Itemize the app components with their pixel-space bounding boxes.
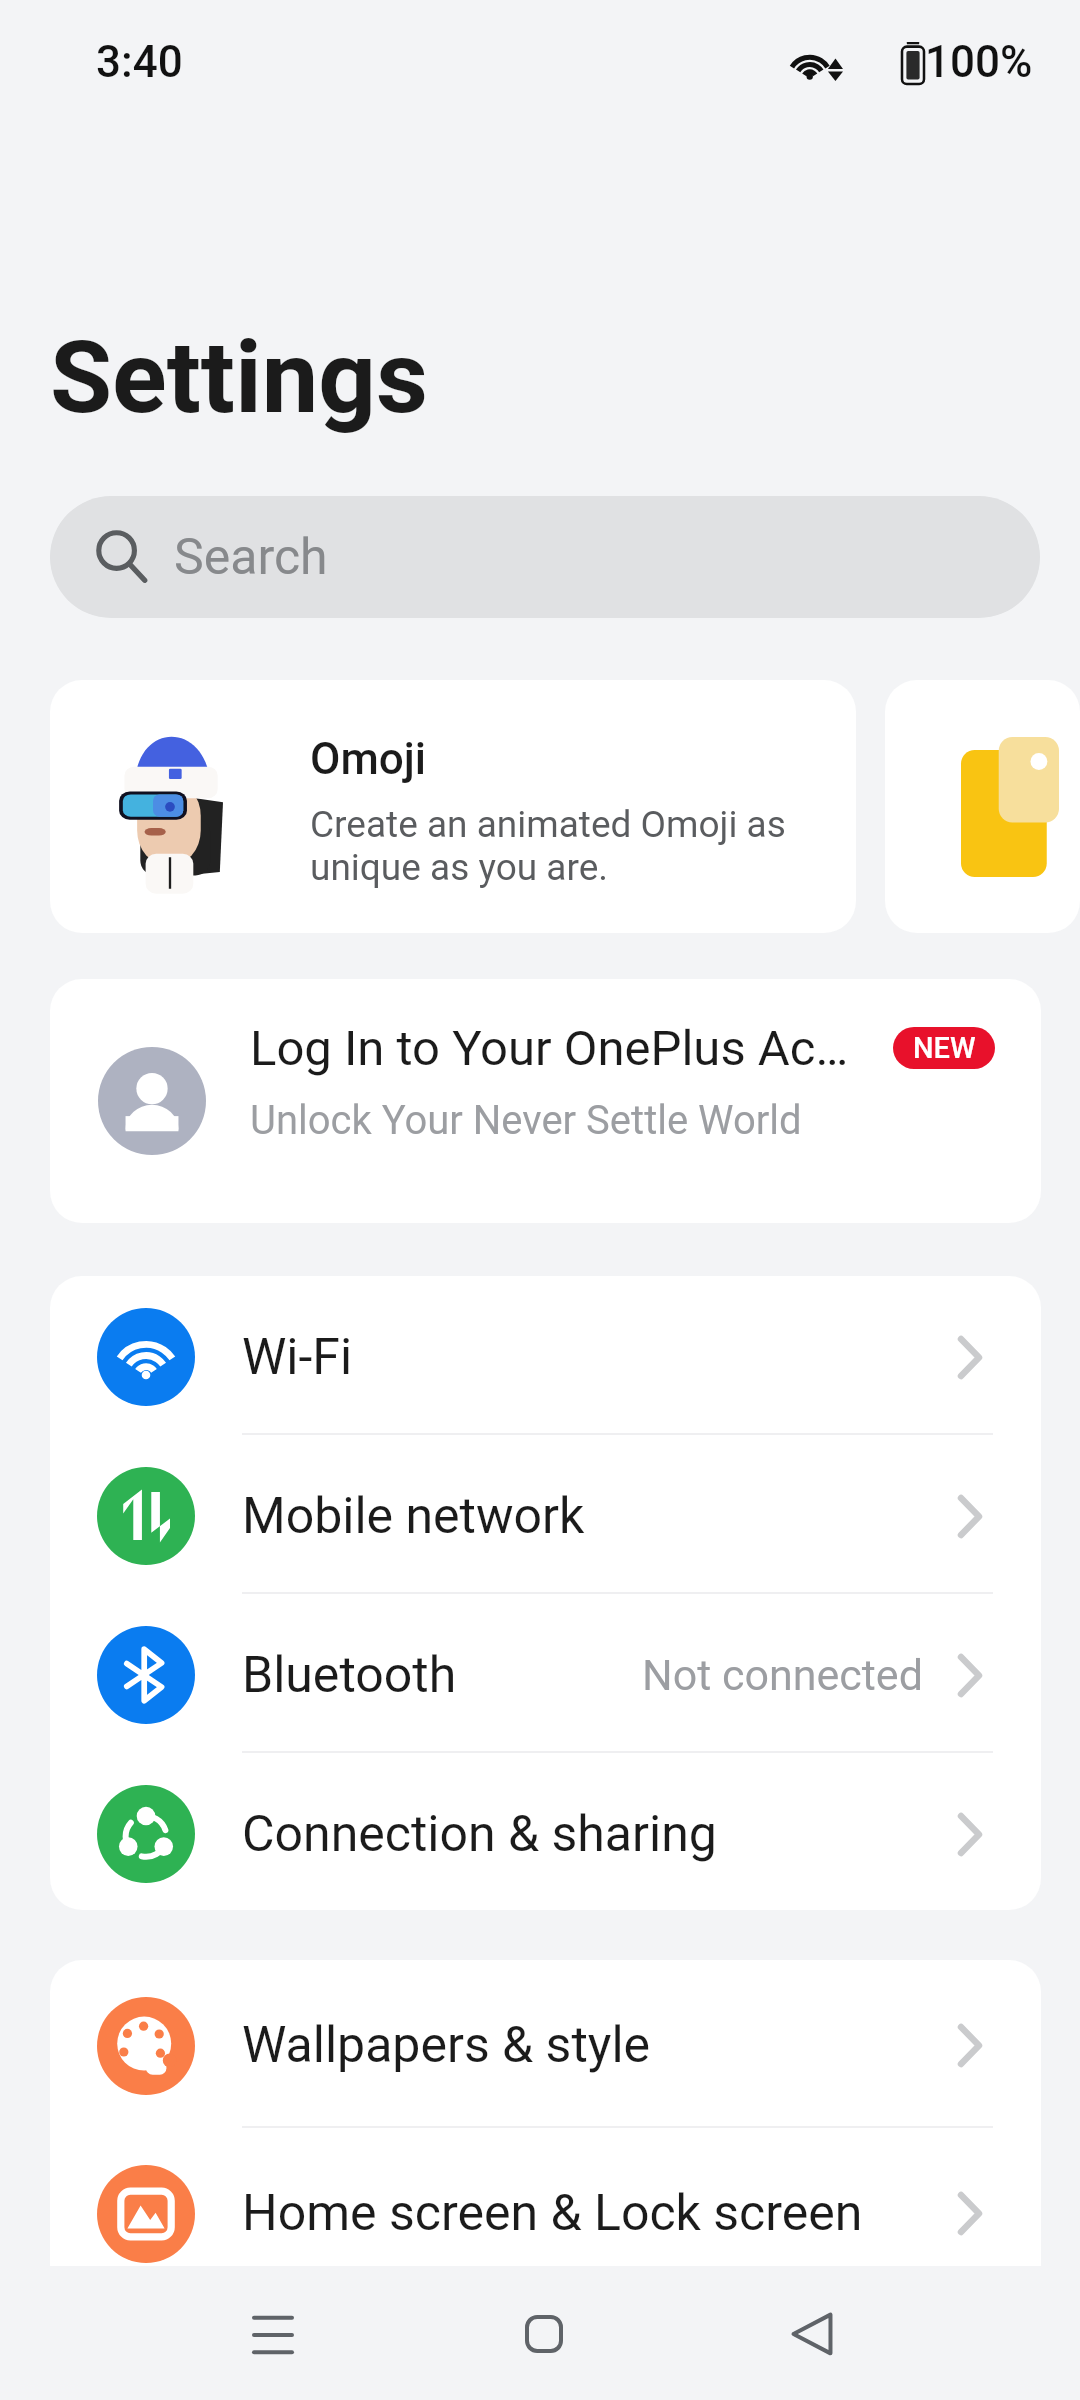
button[interactable]: Connection & sharing — [50, 1753, 1041, 1910]
button[interactable]: Mobile network — [50, 1435, 1041, 1592]
staticText: Not connected — [642, 1650, 923, 1700]
staticText: Mobile network — [242, 1487, 958, 1546]
button[interactable]: Home screen & Lock screen — [50, 2128, 1041, 2294]
button[interactable]: Search — [50, 496, 1040, 618]
staticText: Bluetooth — [242, 1646, 642, 1705]
staticText: Log In to Your OnePlus Ac… — [250, 1020, 849, 1077]
staticText: Wallpapers & style — [242, 2016, 958, 2075]
staticText: Search — [174, 528, 328, 587]
staticText: Wi-Fi — [242, 1328, 958, 1387]
button[interactable]: Wi-Fi — [50, 1276, 1041, 1433]
staticText: Connection & sharing — [242, 1805, 958, 1864]
staticText: Home screen & Lock screen — [242, 2184, 958, 2243]
staticText: 100% — [925, 36, 1033, 88]
button[interactable]: Omoji — [50, 680, 856, 933]
staticText: Unlock Your Never Settle World — [250, 1097, 802, 1144]
staticText: Omoji — [310, 733, 427, 785]
button[interactable]: Recent apps — [223, 2284, 323, 2384]
button[interactable]: Bluetooth — [50, 1594, 1041, 1751]
button[interactable]: Card holder — [885, 680, 1080, 933]
staticText: 3:40 — [96, 36, 183, 88]
staticText: Settings — [50, 318, 428, 436]
button[interactable]: Wallpapers & style — [50, 1960, 1041, 2126]
button[interactable]: Home — [494, 2284, 594, 2384]
button[interactable]: Back — [762, 2284, 862, 2384]
button[interactable]: Log In to Your OnePlus Ac… — [50, 979, 1041, 1223]
staticText: NEW — [913, 1031, 976, 1065]
staticText: Create an animated Omoji as unique as yo… — [310, 803, 790, 889]
